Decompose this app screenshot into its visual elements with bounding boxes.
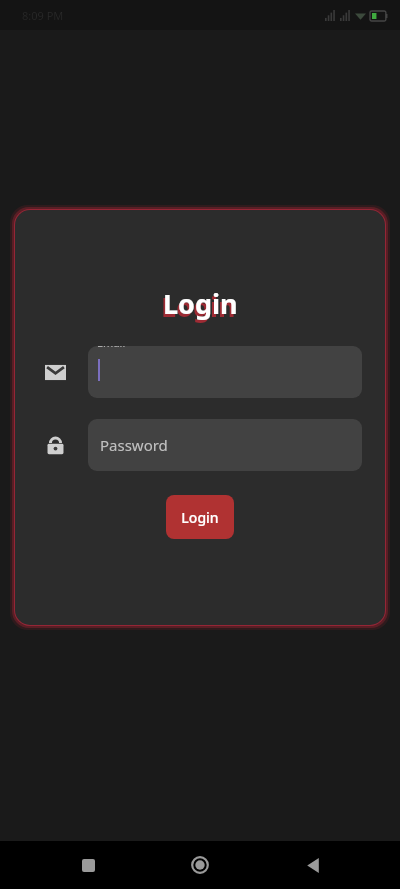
staticText: Login xyxy=(163,285,238,322)
button[interactable]: Home xyxy=(176,841,224,889)
staticText: Login xyxy=(181,508,219,527)
button[interactable]: Login xyxy=(166,495,234,539)
other: Password xyxy=(35,425,75,465)
button[interactable]: Email xyxy=(88,346,362,398)
button[interactable]: Recent apps xyxy=(64,841,112,889)
button[interactable]: Back xyxy=(288,841,336,889)
other: Email xyxy=(35,352,75,392)
staticText: Email xyxy=(97,346,126,350)
button[interactable]: Password xyxy=(88,419,362,471)
staticText: Password xyxy=(100,435,168,455)
staticText: 8:09 PM xyxy=(22,8,64,23)
staticText: Login xyxy=(161,288,236,325)
